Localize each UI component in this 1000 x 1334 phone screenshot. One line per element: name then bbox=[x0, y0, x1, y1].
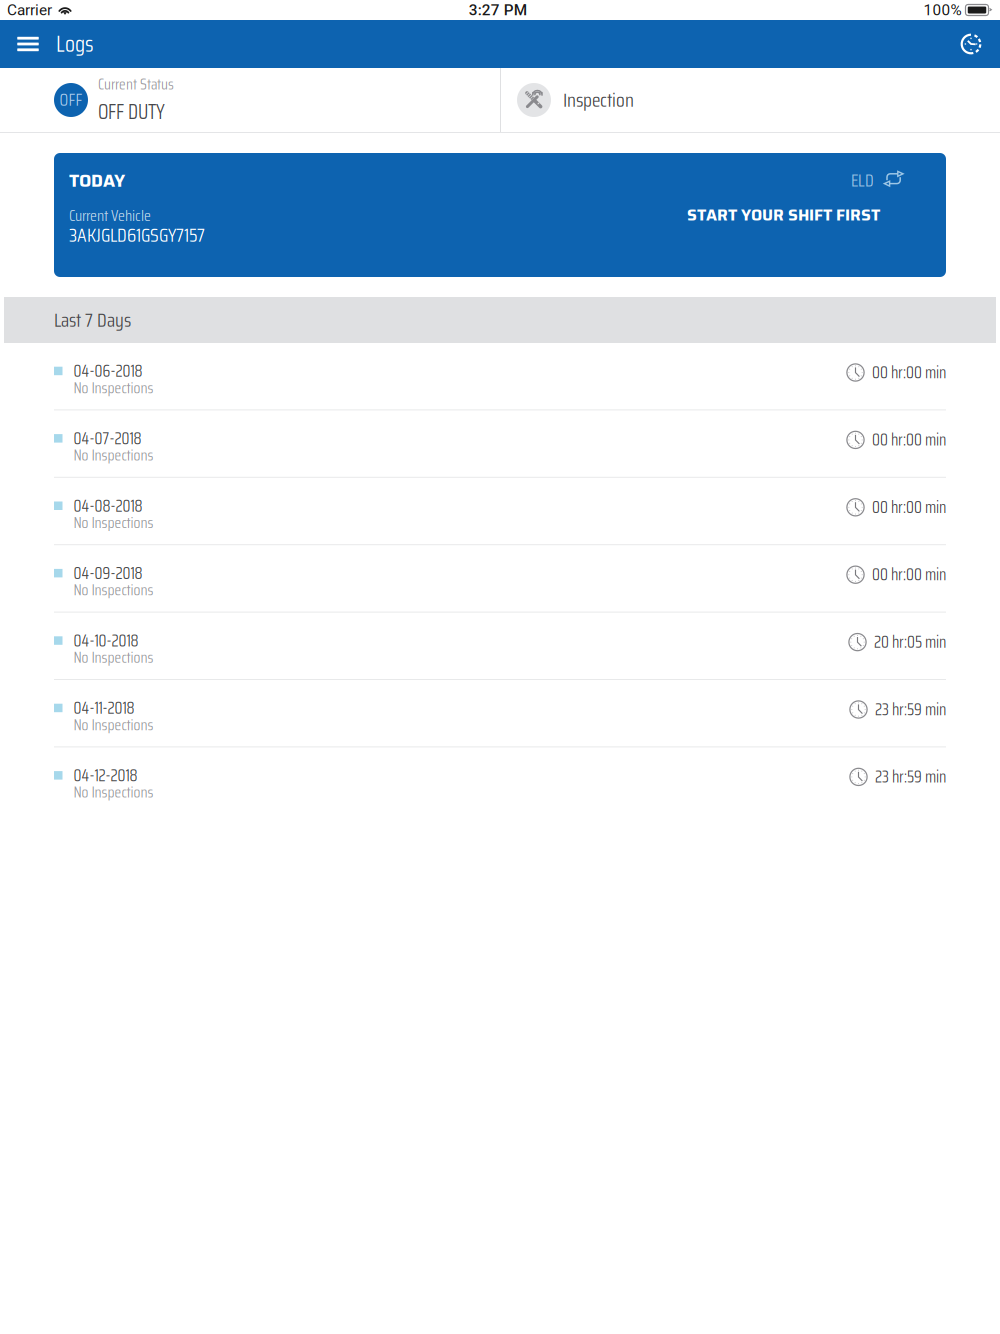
staticText: 04-11-2018 bbox=[73, 695, 134, 721]
staticText: 23 hr:59 min bbox=[875, 764, 946, 790]
staticText: 20 hr:05 min bbox=[874, 629, 946, 655]
staticText: 04-08-2018 bbox=[73, 493, 142, 519]
staticText: 00 hr:00 min bbox=[872, 360, 946, 385]
staticText: No Inspections bbox=[73, 443, 153, 467]
staticText: 23 hr:59 min bbox=[875, 697, 946, 722]
button[interactable]: Menu bbox=[0, 20, 56, 68]
button[interactable]: 04-08-2018 bbox=[0, 478, 1000, 544]
staticText: START YOUR SHIFT FIRST bbox=[687, 202, 880, 228]
staticText: TODAY bbox=[69, 167, 125, 194]
button[interactable]: Inspection bbox=[501, 68, 1000, 132]
button[interactable]: 04-07-2018 bbox=[0, 410, 1000, 477]
staticText: 04-12-2018 bbox=[73, 763, 137, 788]
staticText: 3:27 PM bbox=[469, 1, 527, 19]
staticText: OFF bbox=[59, 87, 82, 113]
staticText: 04-07-2018 bbox=[73, 426, 141, 451]
button[interactable]: 04-06-2018 bbox=[0, 343, 1000, 409]
button[interactable]: Hours of service bbox=[942, 20, 1000, 68]
button[interactable]: 04-09-2018 bbox=[0, 545, 1000, 612]
staticText: 00 hr:00 min bbox=[872, 427, 946, 453]
button[interactable]: 04-12-2018 bbox=[0, 747, 1000, 814]
staticText: Current Vehicle bbox=[69, 203, 151, 228]
staticText: No Inspections bbox=[73, 375, 153, 400]
staticText: No Inspections bbox=[73, 780, 153, 804]
button[interactable]: 04-11-2018 bbox=[0, 680, 1000, 746]
staticText: Inspection bbox=[563, 84, 634, 116]
staticText: No Inspections bbox=[73, 712, 153, 737]
staticText: 04-09-2018 bbox=[73, 561, 142, 586]
staticText: Carrier bbox=[7, 1, 52, 19]
staticText: Logs bbox=[56, 26, 93, 62]
staticText: No Inspections bbox=[73, 578, 153, 602]
staticText: Current Status bbox=[98, 72, 174, 96]
staticText: 00 hr:00 min bbox=[872, 494, 946, 520]
staticText: ELD bbox=[851, 167, 874, 194]
staticText: 04-10-2018 bbox=[73, 628, 138, 654]
staticText: 3AKJGLD61GSGY7157 bbox=[69, 220, 205, 250]
staticText: OFF DUTY bbox=[98, 96, 165, 128]
staticText: 04-06-2018 bbox=[73, 358, 142, 384]
staticText: 00 hr:00 min bbox=[872, 562, 946, 587]
staticText: 100% bbox=[923, 1, 961, 19]
button[interactable]: 04-10-2018 bbox=[0, 613, 1000, 679]
staticText: Last 7 Days bbox=[54, 305, 131, 335]
staticText: No Inspections bbox=[73, 645, 153, 670]
staticText: No Inspections bbox=[73, 510, 153, 535]
button[interactable]: OFF bbox=[0, 68, 500, 132]
